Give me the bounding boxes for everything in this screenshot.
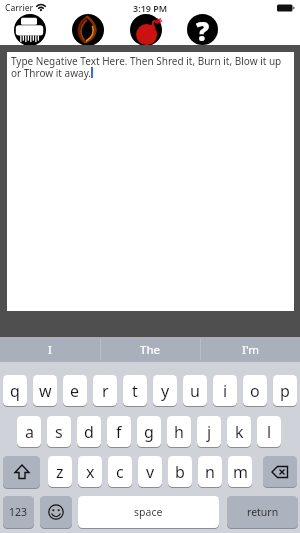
- button[interactable]: ?: [187, 14, 218, 45]
- button[interactable]: p: [273, 375, 297, 406]
- staticText: space: [134, 505, 163, 519]
- button[interactable]: b: [168, 456, 192, 487]
- staticText: i: [223, 380, 228, 402]
- button[interactable]: i: [213, 375, 237, 406]
- staticText: 3:19 PM: [133, 2, 168, 14]
- button[interactable]: g: [137, 416, 161, 447]
- staticText: p: [280, 380, 290, 402]
- staticText: h: [174, 421, 184, 443]
- button[interactable]: e: [63, 375, 87, 406]
- staticText: c: [116, 461, 124, 483]
- button[interactable]: z: [48, 456, 72, 487]
- button[interactable]: [14, 14, 46, 46]
- button[interactable]: c: [108, 456, 132, 487]
- button[interactable]: space: [78, 496, 219, 528]
- staticText: w: [39, 380, 52, 402]
- staticText: g: [144, 421, 154, 443]
- button[interactable]: o: [243, 375, 267, 406]
- button[interactable]: I: [0, 337, 100, 362]
- staticText: The: [140, 342, 160, 358]
- staticText: r: [102, 380, 109, 402]
- staticText: j: [207, 421, 212, 443]
- button[interactable]: x: [78, 456, 102, 487]
- button[interactable]: j: [197, 416, 221, 447]
- staticText: Carrier: [5, 2, 34, 14]
- button[interactable]: return: [227, 496, 298, 528]
- staticText: I'm: [242, 342, 259, 358]
- button[interactable]: Type Negative Text Here. Then Shred it, …: [7, 52, 294, 311]
- button[interactable]: 123: [3, 496, 34, 528]
- staticText: return: [247, 505, 279, 519]
- staticText: ?: [196, 14, 210, 44]
- staticText: u: [190, 380, 200, 402]
- staticText: s: [55, 421, 63, 443]
- button[interactable]: l: [257, 416, 281, 447]
- staticText: l: [267, 421, 272, 443]
- staticText: e: [70, 380, 80, 402]
- button[interactable]: v: [138, 456, 162, 487]
- staticText: o: [250, 380, 260, 402]
- staticText: t: [132, 380, 138, 402]
- staticText: 123: [9, 505, 28, 519]
- staticText: n: [205, 461, 215, 483]
- staticText: y: [161, 380, 170, 402]
- staticText: x: [86, 461, 95, 483]
- button[interactable]: The: [100, 337, 200, 362]
- button[interactable]: w: [33, 375, 57, 406]
- staticText: a: [25, 421, 34, 443]
- staticText: m: [233, 461, 248, 483]
- button[interactable]: f: [107, 416, 131, 447]
- button[interactable]: n: [198, 456, 222, 487]
- staticText: q: [10, 380, 20, 402]
- button[interactable]: I'm: [200, 337, 300, 362]
- button[interactable]: q: [3, 375, 27, 406]
- staticText: Type Negative Text Here. Then Shred it, …: [11, 54, 282, 80]
- button[interactable]: m: [228, 456, 252, 487]
- button[interactable]: [130, 14, 162, 46]
- button[interactable]: t: [123, 375, 147, 406]
- button[interactable]: h: [167, 416, 191, 447]
- staticText: d: [84, 421, 94, 443]
- button[interactable]: [263, 456, 297, 487]
- staticText: v: [146, 461, 155, 483]
- staticText: z: [56, 461, 64, 483]
- button[interactable]: u: [183, 375, 207, 406]
- button[interactable]: s: [47, 416, 71, 447]
- staticText: f: [116, 421, 122, 443]
- button[interactable]: d: [77, 416, 101, 447]
- button[interactable]: y: [153, 375, 177, 406]
- button[interactable]: a: [17, 416, 41, 447]
- staticText: I: [48, 342, 52, 358]
- button[interactable]: [3, 456, 40, 488]
- button[interactable]: r: [93, 375, 117, 406]
- staticText: b: [175, 461, 185, 483]
- button[interactable]: k: [227, 416, 251, 447]
- button[interactable]: [40, 496, 72, 528]
- staticText: k: [235, 421, 244, 443]
- button[interactable]: [72, 14, 104, 46]
